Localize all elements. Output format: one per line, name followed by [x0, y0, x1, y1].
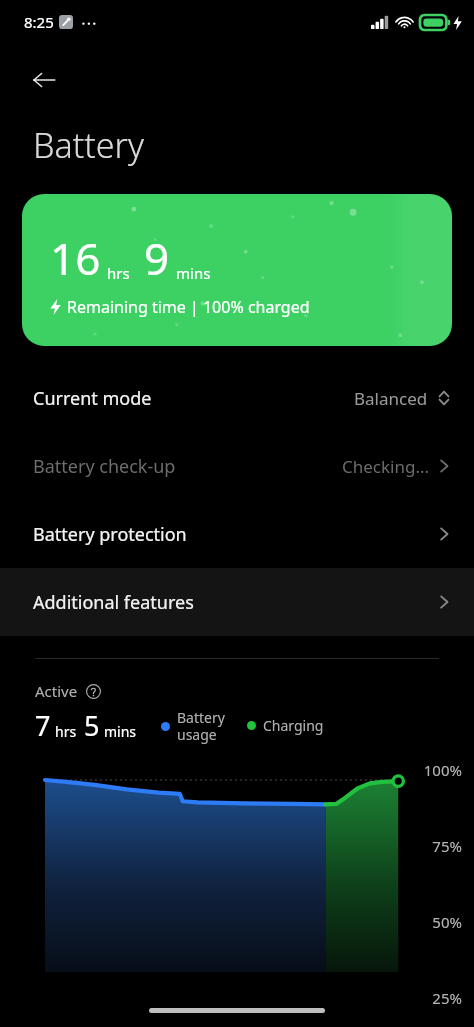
staticText: 100%: [423, 760, 462, 780]
staticText: Battery protection: [33, 522, 187, 547]
staticText: Battery: [33, 122, 144, 168]
staticText: 9: [144, 228, 170, 288]
staticText: Active: [35, 681, 78, 701]
staticText: Battery check-up: [33, 454, 176, 479]
staticText: hrs: [55, 722, 77, 741]
staticText: hrs: [107, 263, 130, 283]
button[interactable]: Back: [20, 56, 68, 104]
button[interactable]: Current mode: [0, 364, 474, 432]
staticText: mins: [104, 722, 137, 741]
staticText: 16: [50, 228, 101, 288]
staticText: 5: [84, 707, 100, 744]
staticText: Current mode: [33, 386, 152, 411]
staticText: mins: [176, 263, 211, 283]
button[interactable]: 16: [22, 194, 452, 346]
staticText: Battery usage: [177, 708, 225, 744]
button[interactable]: Battery protection: [0, 500, 474, 568]
staticText: Additional features: [33, 590, 194, 615]
staticText: 25%: [432, 988, 462, 1008]
button[interactable]: Help about active time: [84, 682, 102, 700]
staticText: Charging: [263, 716, 324, 735]
staticText: 8:25: [24, 12, 54, 32]
staticText: 50%: [432, 912, 462, 932]
staticText: Checking...: [342, 455, 430, 478]
staticText: Remaining time | 100% charged: [67, 296, 310, 318]
staticText: 7: [35, 707, 51, 744]
staticText: 75%: [432, 836, 462, 856]
button[interactable]: Additional features: [0, 568, 474, 636]
staticText: Balanced: [354, 387, 428, 410]
button[interactable]: Battery check-up: [0, 432, 474, 500]
